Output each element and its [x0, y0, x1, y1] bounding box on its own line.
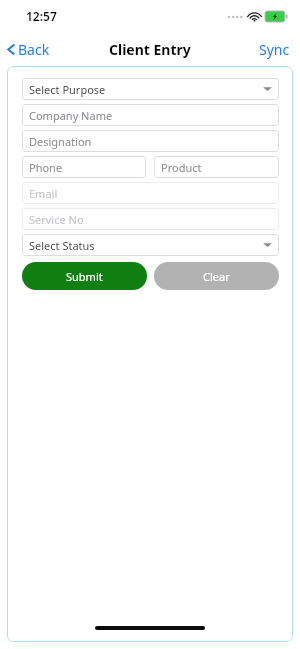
button[interactable]: Designation [22, 130, 279, 152]
staticText: Service No [29, 212, 84, 227]
staticText: Client Entry [109, 40, 191, 59]
button[interactable]: Phone [22, 156, 146, 178]
staticText: Sync [259, 40, 290, 59]
staticText: 12:57 [26, 8, 57, 24]
other: Open Select Purpose options [263, 86, 272, 92]
button[interactable]: Sync [249, 35, 300, 64]
button[interactable]: Product [154, 156, 279, 178]
button[interactable]: Company Name [22, 104, 279, 126]
staticText: Product [161, 160, 202, 175]
staticText: Phone [29, 160, 63, 175]
staticText: Email [29, 186, 58, 201]
button[interactable]: Email [22, 182, 279, 204]
button[interactable]: Submit [22, 262, 147, 290]
button[interactable]: Back [0, 36, 58, 63]
staticText: Company Name [29, 108, 113, 123]
staticText: Back [18, 40, 50, 59]
staticText: Submit [66, 269, 103, 284]
other: Open Select Status options [263, 242, 272, 248]
button[interactable]: Select Status [22, 234, 279, 256]
staticText: Select Purpose [29, 82, 106, 97]
button[interactable]: Clear [154, 262, 279, 290]
staticText: Clear [203, 269, 230, 284]
staticText: Designation [29, 134, 92, 149]
button[interactable]: Select Purpose [22, 78, 279, 100]
button[interactable]: Service No [22, 208, 279, 230]
staticText: Select Status [29, 238, 95, 253]
